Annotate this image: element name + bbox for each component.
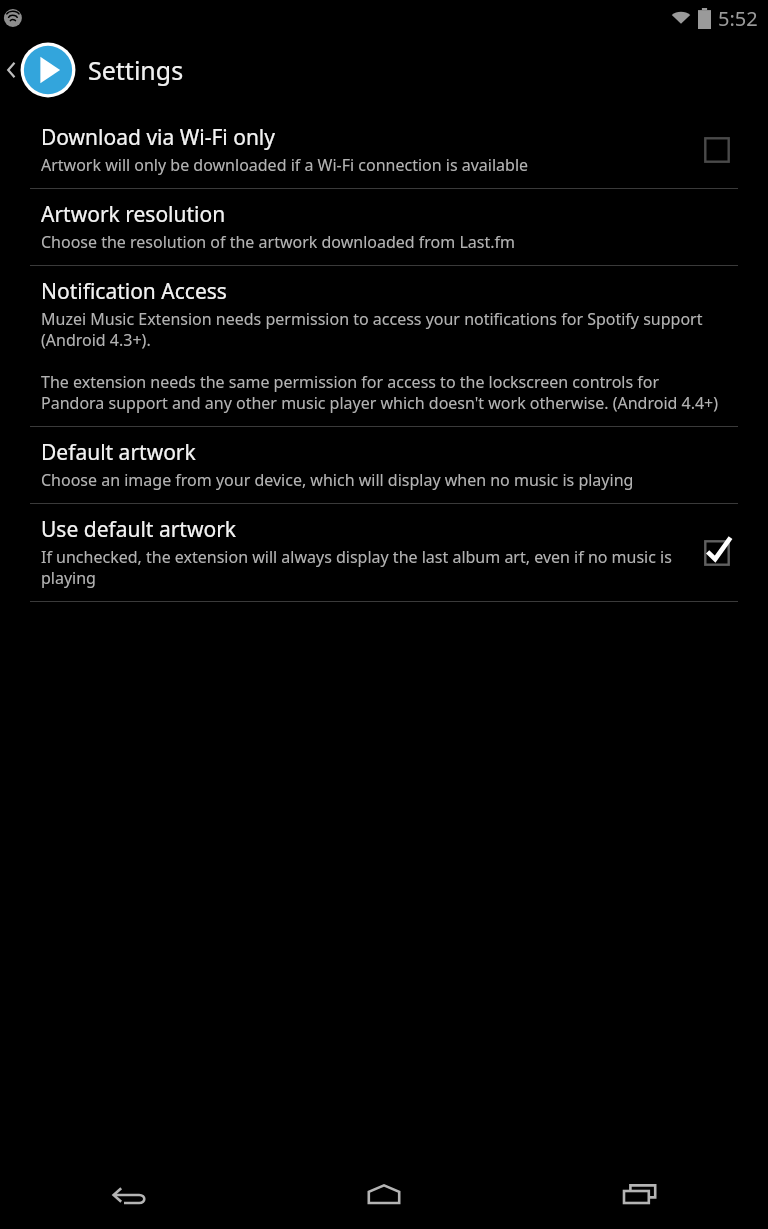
button[interactable]: Recent apps xyxy=(512,1160,768,1229)
staticText: Notification Access xyxy=(41,277,227,306)
staticText: Settings xyxy=(88,53,184,87)
button[interactable]: Home xyxy=(256,1160,512,1229)
button[interactable]: Use default artwork xyxy=(0,504,768,601)
button[interactable]: Notification Access xyxy=(0,266,768,426)
staticText: Artwork will only be downloaded if a Wi-… xyxy=(41,154,529,176)
staticText: Default artwork xyxy=(41,438,196,467)
button[interactable]: Download via Wi-Fi only xyxy=(696,129,738,171)
button[interactable]: Use default artwork xyxy=(696,532,738,574)
button[interactable]: Artwork resolution xyxy=(0,189,768,265)
button[interactable]: Download via Wi-Fi only xyxy=(0,112,768,188)
staticText: Download via Wi-Fi only xyxy=(41,123,276,152)
staticText: Use default artwork xyxy=(41,515,237,544)
staticText: Choose the resolution of the artwork dow… xyxy=(41,231,515,253)
staticText: If unchecked, the extension will always … xyxy=(41,546,682,589)
staticText: 5:52 xyxy=(718,5,758,32)
staticText: Artwork resolution xyxy=(41,200,226,229)
button[interactable]: Default artwork xyxy=(0,427,768,503)
button[interactable]: Up, Settings xyxy=(0,36,768,103)
staticText: Muzei Music Extension needs permission t… xyxy=(41,308,724,414)
staticText: Choose an image from your device, which … xyxy=(41,469,634,491)
button[interactable]: Back xyxy=(0,1160,256,1229)
